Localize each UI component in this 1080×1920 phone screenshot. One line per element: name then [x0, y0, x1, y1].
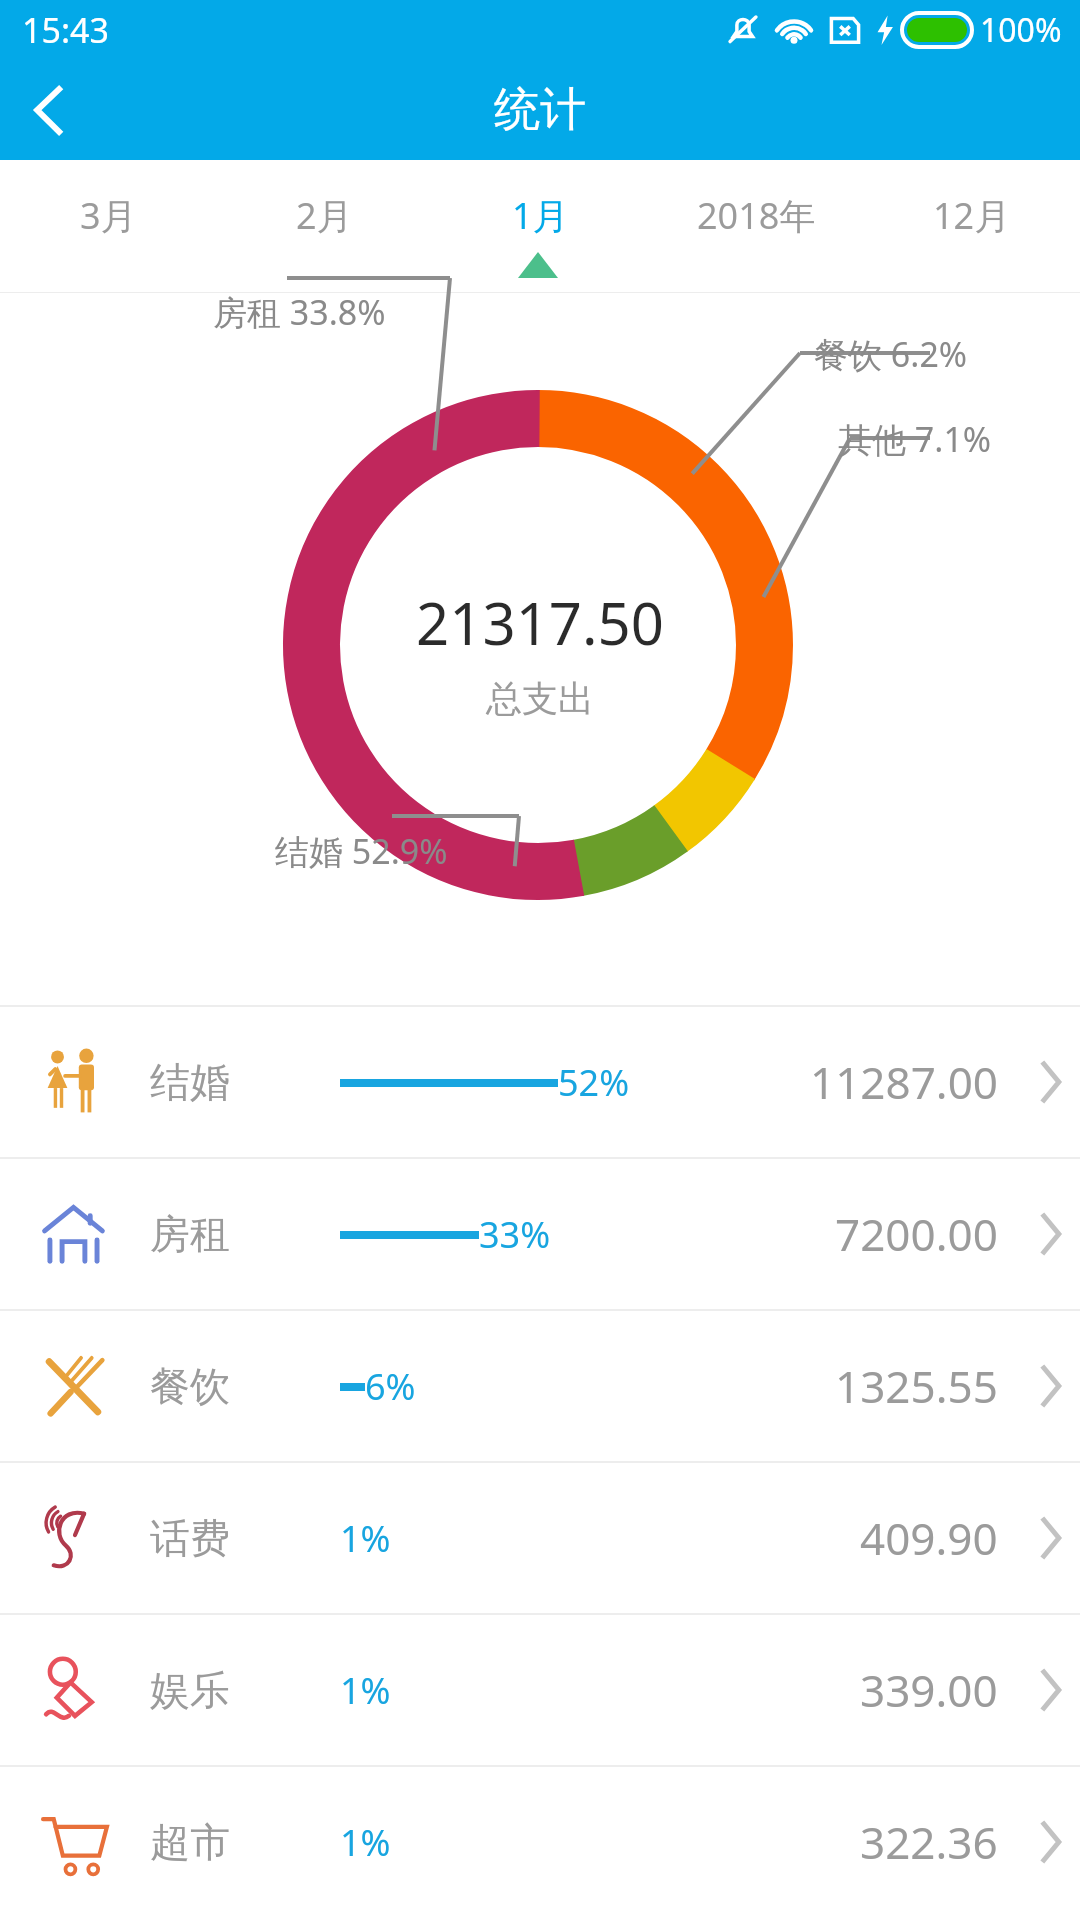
other: No SIM: [828, 12, 862, 48]
staticText: 100%: [980, 8, 1062, 52]
staticText: 结婚 52.9%: [275, 828, 448, 874]
other: Silent: [726, 12, 760, 48]
button[interactable]: 3月: [0, 160, 216, 270]
staticText: 21317.50: [416, 583, 664, 662]
other: Wi-Fi: [774, 13, 814, 47]
staticText: 6%: [365, 1362, 416, 1411]
staticText: 统计: [494, 81, 586, 139]
staticText: 2018年: [697, 191, 816, 240]
staticText: 409.90: [860, 1508, 998, 1568]
staticText: 房租: [150, 1209, 340, 1259]
staticText: 33%: [479, 1210, 551, 1259]
staticText: 3月: [80, 191, 137, 240]
staticText: 52%: [558, 1058, 630, 1107]
staticText: 1%: [340, 1818, 391, 1867]
staticText: 结婚: [150, 1057, 340, 1107]
staticText: 1325.55: [835, 1356, 998, 1416]
button[interactable]: 餐饮: [0, 1311, 1080, 1461]
button[interactable]: 房租: [0, 1159, 1080, 1309]
staticText: 2月: [296, 191, 353, 240]
staticText: 339.00: [860, 1660, 998, 1720]
staticText: 7200.00: [835, 1204, 998, 1264]
staticText: 11287.00: [810, 1052, 998, 1112]
staticText: 15:43: [22, 7, 109, 53]
staticText: 1月: [512, 191, 569, 240]
button[interactable]: 2月: [216, 160, 432, 270]
staticText: 12月: [933, 191, 1011, 240]
staticText: 超市: [150, 1817, 340, 1867]
staticText: 餐饮: [150, 1361, 340, 1411]
button[interactable]: 结婚: [0, 1007, 1080, 1157]
other: Battery 100%: [902, 13, 972, 47]
staticText: 餐饮 6.2%: [814, 331, 968, 377]
staticText: 话费: [150, 1513, 340, 1563]
staticText: 娱乐: [150, 1665, 340, 1715]
button[interactable]: 娱乐: [0, 1615, 1080, 1765]
staticText: 总支出: [486, 676, 594, 721]
staticText: 322.36: [860, 1812, 998, 1872]
button[interactable]: 超市: [0, 1767, 1080, 1917]
staticText: 1%: [340, 1514, 391, 1563]
staticText: 房租 33.8%: [213, 289, 386, 335]
staticText: 1%: [340, 1666, 391, 1715]
staticText: 其他 7.1%: [838, 416, 992, 462]
button[interactable]: 12月: [864, 160, 1080, 270]
button[interactable]: 2018年: [648, 160, 864, 270]
button[interactable]: 1月: [432, 160, 648, 270]
button[interactable]: 话费: [0, 1463, 1080, 1613]
button[interactable]: Back: [0, 60, 100, 160]
